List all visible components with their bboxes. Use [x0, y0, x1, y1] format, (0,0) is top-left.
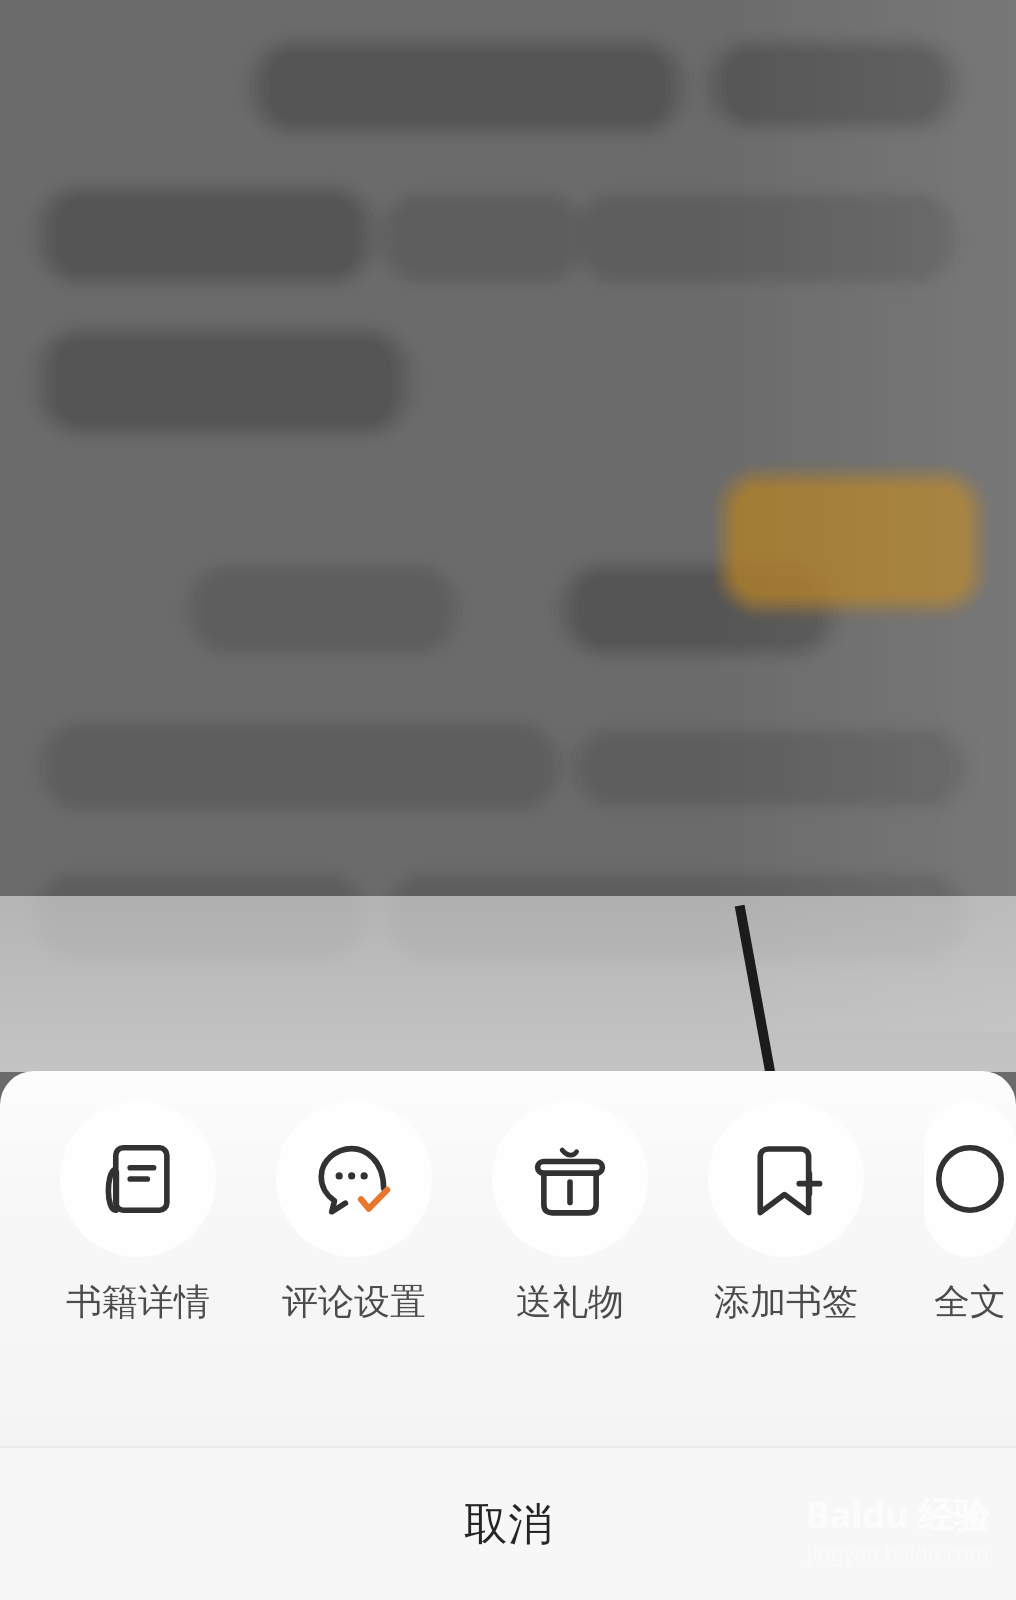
staticText: 添加书签	[714, 1279, 858, 1324]
staticText: 评论设置	[282, 1279, 426, 1324]
staticText: 书籍详情	[66, 1279, 210, 1324]
button[interactable]: Full text	[924, 1101, 1016, 1324]
staticText: 送礼物	[516, 1279, 624, 1324]
staticText: 全文	[934, 1279, 1006, 1324]
button[interactable]: Add bookmark	[708, 1101, 864, 1324]
button[interactable]: Comment settings	[276, 1101, 432, 1324]
button[interactable]: Send gift	[492, 1101, 648, 1324]
button[interactable]: 取消	[0, 1448, 1016, 1600]
staticText: 取消	[464, 1497, 552, 1552]
button[interactable]: Book details	[60, 1101, 216, 1324]
